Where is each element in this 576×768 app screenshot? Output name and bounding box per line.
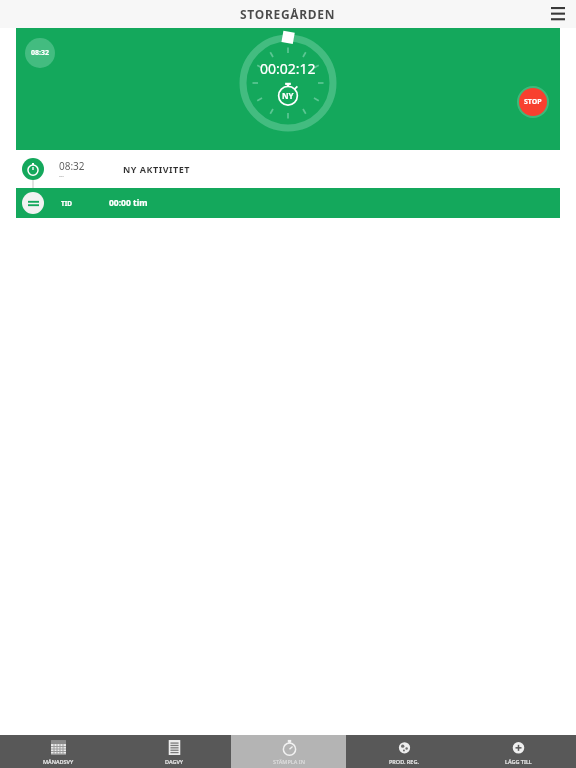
staticText: --- (59, 173, 64, 180)
staticText: LÄGG TILL (505, 758, 532, 765)
button[interactable]: 08:32 (16, 28, 560, 150)
staticText: STOREGÅRDEN (240, 6, 336, 22)
staticText: 00:00 tim (109, 197, 148, 209)
staticText: STOP (524, 97, 542, 107)
staticText: NY (282, 90, 294, 101)
staticText: 08:32 (59, 159, 85, 173)
button[interactable]: LÄGG TILL (461, 735, 576, 768)
button[interactable]: PROD. REG. (346, 735, 461, 768)
staticText: TID (61, 199, 73, 208)
button[interactable]: 08:32 (25, 38, 55, 68)
button[interactable]: STÄMPLA IN (231, 735, 346, 768)
staticText: 00:02:12 (260, 59, 316, 78)
button[interactable]: 08:32 (16, 150, 560, 188)
staticText: 08:32 (31, 48, 49, 58)
staticText: STÄMPLA IN (273, 758, 305, 765)
staticText: NY AKTIVITET (123, 163, 190, 175)
button[interactable]: STOP (519, 88, 547, 116)
button[interactable]: TID (16, 188, 560, 218)
button[interactable]: Menu (545, 1, 571, 27)
staticText: MÅNADSVY (43, 758, 74, 765)
staticText: PROD. REG. (389, 758, 419, 765)
staticText: DAGVY (165, 758, 183, 765)
button[interactable]: MÅNADSVY (0, 735, 116, 768)
button[interactable]: DAGVY (116, 735, 231, 768)
